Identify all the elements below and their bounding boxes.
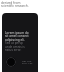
staticText: adipiscing eli. <box>5 38 25 42</box>
staticText: scientific research. <box>1 4 29 8</box>
staticText: FULL APP <box>22 61 33 64</box>
staticText: sit amet consect <box>5 34 29 38</box>
button[interactable]: Play <box>6 57 16 67</box>
staticText: natus error. <box>5 48 22 52</box>
staticText: Lorem ipsum do <box>5 31 29 35</box>
staticText: unde omnis is <box>5 45 25 49</box>
staticText: derived from <box>1 1 21 5</box>
staticText: GET THE <box>22 59 32 62</box>
staticText: Sed ut persp <box>5 41 23 45</box>
